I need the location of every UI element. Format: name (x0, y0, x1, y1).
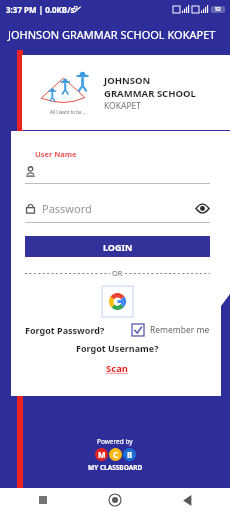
staticText: Remember me (150, 324, 210, 336)
button[interactable]: LOGIN (25, 236, 210, 257)
button[interactable]: Show password (194, 200, 210, 216)
staticText: 3:37 PM | 0.0KB/s (6, 4, 75, 15)
staticText: GRAMMAR SCHOOL (104, 87, 196, 100)
button[interactable]: Forgot Password? (25, 324, 105, 336)
staticText: KOKAPET (104, 100, 142, 112)
staticText: Powered by (97, 437, 133, 446)
button[interactable]: Remember me (132, 324, 210, 336)
staticText: Password (42, 201, 92, 216)
staticText: 52 (215, 6, 221, 13)
button[interactable]: Recents (34, 491, 52, 509)
staticText: B (127, 449, 133, 460)
button[interactable]: Forgot Username? (76, 342, 159, 354)
button[interactable]: Sign in with Google (102, 286, 133, 317)
staticText: LOGIN (103, 241, 133, 253)
staticText: User Name (35, 149, 77, 159)
staticText: All I want to be ... (50, 109, 87, 115)
staticText: C (113, 449, 119, 460)
button[interactable]: Scan (106, 362, 129, 375)
button[interactable]: Home (106, 491, 124, 509)
button[interactable]: Back (178, 491, 196, 509)
staticText: JOHNSON GRAMMAR SCHOOL KOKAPET (8, 27, 216, 42)
staticText: M (98, 449, 106, 460)
staticText: OR (110, 268, 125, 278)
staticText: MY CLASSBOARD (88, 463, 143, 472)
staticText: JOHNSON (104, 74, 151, 87)
